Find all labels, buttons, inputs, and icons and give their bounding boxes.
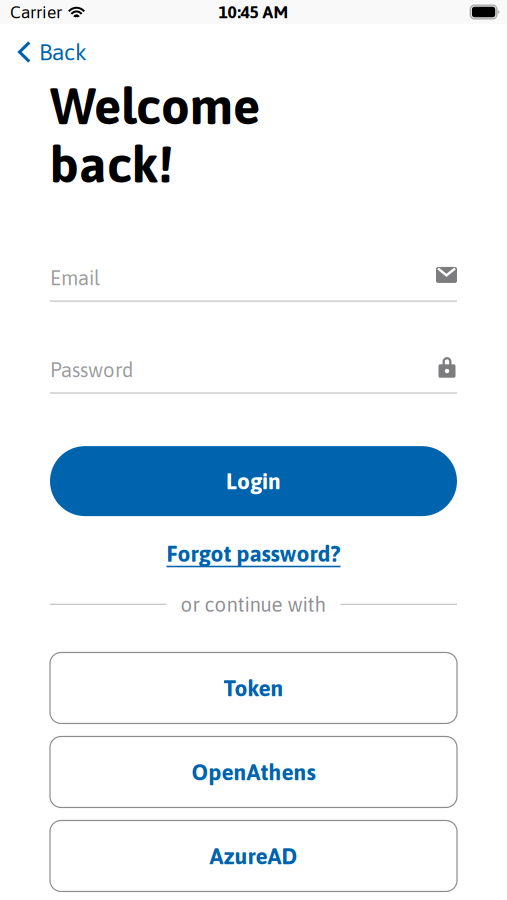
staticText: Back [39, 39, 87, 65]
staticText: 10:45 AM [218, 2, 288, 22]
staticText: Email [50, 266, 100, 289]
button[interactable]: Forgot password? [166, 540, 340, 566]
staticText: or continue with [180, 593, 326, 616]
staticText: Token [223, 675, 283, 701]
staticText: back! [50, 135, 173, 193]
staticText: Welcome [50, 77, 260, 135]
staticText: OpenAthens [191, 759, 315, 785]
button[interactable]: Token [50, 652, 457, 723]
button[interactable]: OpenAthens [50, 736, 457, 807]
staticText: Login [226, 468, 281, 494]
button[interactable]: AzureAD [50, 820, 457, 891]
button[interactable]: Login [50, 446, 457, 516]
staticText: Carrier [10, 2, 62, 22]
button[interactable]: Back [0, 24, 101, 80]
staticText: AzureAD [209, 843, 297, 869]
staticText: Forgot password? [166, 540, 340, 566]
staticText: Password [50, 358, 133, 381]
